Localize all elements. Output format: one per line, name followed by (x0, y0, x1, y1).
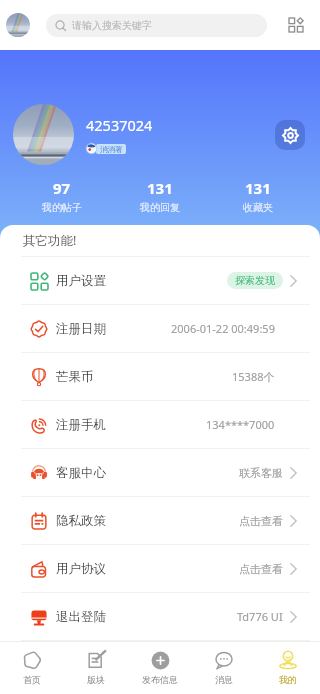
button[interactable]: 隐私政策 (0, 497, 320, 545)
button[interactable]: 版块 (64, 641, 128, 694)
staticText: 版块 (87, 674, 105, 685)
staticText: 42537024 (86, 115, 153, 135)
staticText: 请输入搜索关键字 (72, 19, 152, 32)
button[interactable]: 用户设置 (0, 257, 320, 305)
staticText: 收藏夹 (243, 201, 273, 214)
staticText: 注册日期 (56, 321, 106, 337)
button[interactable]: 注册手机 (0, 401, 320, 449)
button[interactable]: 首页 (0, 641, 64, 694)
staticText: 点击查看 (239, 562, 283, 576)
staticText: 131 (147, 178, 173, 198)
button[interactable]: 注册日期 (0, 305, 320, 353)
staticText: 消消署 (100, 145, 123, 154)
button[interactable] (13, 104, 74, 165)
staticText: 探索发现 (235, 274, 275, 287)
staticText: 隐私政策 (56, 513, 106, 529)
staticText: 131 (245, 178, 271, 198)
staticText: 我的 (279, 674, 297, 685)
button[interactable]: Settings (275, 120, 305, 150)
staticText: 134****7000 (206, 417, 275, 432)
staticText: 我的帖子 (42, 201, 82, 214)
button[interactable]: 退出登陆 (0, 593, 320, 641)
button[interactable]: 97 (13, 178, 111, 214)
button[interactable]: 发布信息 (128, 641, 192, 694)
staticText: 芒果币 (56, 369, 94, 385)
staticText: 退出登陆 (56, 609, 106, 625)
staticText: 发布信息 (142, 674, 178, 685)
button[interactable]: 我的 (256, 641, 320, 694)
staticText: 联系客服 (239, 466, 283, 480)
button[interactable]: 131 (111, 178, 209, 214)
staticText: 注册手机 (56, 417, 106, 433)
staticText: 其它功能! (23, 232, 77, 249)
staticText: Td776 UI (237, 609, 283, 624)
button[interactable]: Profile avatar (6, 13, 30, 37)
button[interactable]: 131 (209, 178, 307, 214)
staticText: 用户协议 (56, 561, 106, 577)
button[interactable]: 消息 (192, 641, 256, 694)
staticText: 2006-01-22 00:49:59 (171, 321, 275, 336)
staticText: 15388个 (232, 369, 275, 384)
button[interactable]: 用户协议 (0, 545, 320, 593)
button[interactable]: Apps grid (283, 12, 309, 38)
staticText: 点击查看 (239, 514, 283, 528)
staticText: 客服中心 (56, 465, 106, 481)
button[interactable]: 请输入搜索关键字 (46, 14, 267, 37)
staticText: 97 (53, 178, 71, 198)
staticText: 用户设置 (56, 273, 106, 289)
staticText: 首页 (23, 674, 41, 685)
button[interactable]: 客服中心 (0, 449, 320, 497)
staticText: 我的回复 (140, 201, 180, 214)
staticText: 消息 (215, 674, 233, 685)
button[interactable]: 芒果币 (0, 353, 320, 401)
